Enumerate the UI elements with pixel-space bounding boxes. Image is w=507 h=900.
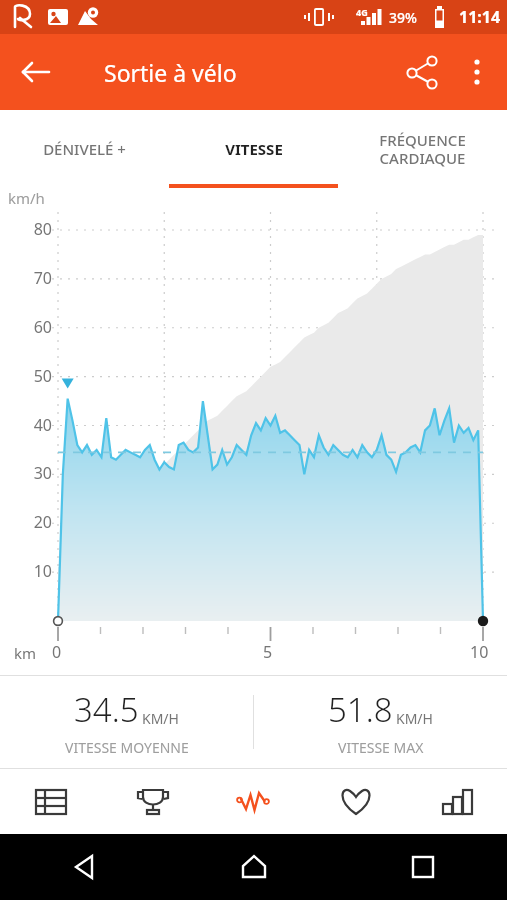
button[interactable]: Statistics — [406, 769, 507, 834]
staticText: KM/H — [142, 709, 179, 728]
staticText: 40 — [28, 414, 52, 436]
button[interactable]: Home — [169, 834, 338, 900]
button[interactable]: Graph — [204, 769, 305, 834]
button[interactable]: DÉNIVELÉ + — [0, 110, 169, 188]
staticText: 5 — [263, 641, 273, 663]
button[interactable]: FRÉQUENCE CARDIAQUE — [338, 110, 507, 188]
button[interactable]: Back — [8, 44, 64, 100]
staticText: FRÉQUENCE CARDIAQUE — [379, 130, 466, 169]
staticText: 0 — [52, 641, 62, 663]
button[interactable]: Trophies — [102, 769, 204, 834]
staticText: km — [14, 643, 37, 663]
staticText: 10 — [470, 641, 489, 663]
staticText: 11:14 — [459, 6, 501, 28]
button[interactable]: More options — [453, 48, 501, 96]
staticText: km/h — [8, 188, 45, 208]
staticText: 51.8 — [328, 687, 393, 732]
button[interactable]: VITESSE — [169, 110, 338, 188]
staticText: 30 — [28, 462, 52, 484]
staticText: VITESSE MOYENNE — [65, 738, 189, 757]
button[interactable]: Recent apps — [338, 834, 507, 900]
button[interactable]: 34.5 — [0, 676, 253, 768]
button[interactable]: Back — [0, 834, 169, 900]
staticText: 50 — [28, 365, 52, 387]
staticText: 80 — [28, 218, 52, 240]
staticText: VITESSE MAX — [338, 738, 424, 757]
button[interactable]: Share — [397, 46, 449, 98]
staticText: Sortie à vélo — [104, 57, 237, 88]
staticText: 20 — [28, 511, 52, 533]
staticText: DÉNIVELÉ + — [43, 139, 126, 159]
staticText: 4G — [356, 6, 368, 18]
staticText: 39% — [389, 8, 417, 27]
staticText: 60 — [28, 316, 52, 338]
staticText: KM/H — [396, 709, 433, 728]
staticText: 34.5 — [74, 687, 139, 732]
staticText: 70 — [28, 267, 52, 289]
button[interactable]: Activities — [0, 769, 102, 834]
staticText: 10 — [28, 560, 52, 582]
button[interactable]: Favorites — [305, 769, 406, 834]
staticText: VITESSE — [225, 139, 283, 159]
button[interactable]: 51.8 — [254, 676, 507, 768]
